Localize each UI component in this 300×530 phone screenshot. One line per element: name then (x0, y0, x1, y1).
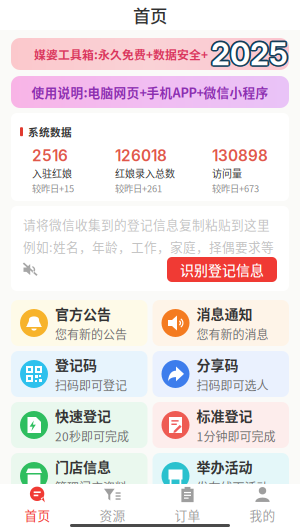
staticText: 登记码 (55, 354, 97, 374)
staticText: 红娘录入总数 (115, 166, 175, 180)
button[interactable]: 门店信息 (11, 453, 147, 499)
staticText: 2025 (210, 34, 287, 71)
staticText: 2025 (211, 34, 288, 71)
staticText: 请将微信收集到的登记信息复制粘贴到这里 (23, 215, 270, 233)
staticText: 识别登记信息 (180, 259, 264, 280)
staticText: 门店信息 (55, 456, 111, 476)
staticText: 标准登记 (196, 405, 252, 425)
staticText: 20秒即可完成 (55, 427, 129, 445)
button[interactable]: 消息通知 (152, 300, 289, 346)
staticText: 2025 (212, 34, 289, 71)
staticText: 2025 (210, 37, 287, 74)
staticText: 首页 (133, 2, 167, 28)
staticText: 2025 (209, 35, 286, 72)
staticText: 1分钟即可完成 (196, 427, 275, 445)
staticText: 分享码 (196, 354, 238, 374)
staticText: 消息通知 (196, 303, 252, 323)
staticText: 2025 (211, 35, 288, 72)
staticText: 较昨日+673 (212, 181, 259, 195)
button[interactable]: 举办活动 (152, 453, 289, 499)
staticText: 126018 (115, 146, 167, 165)
staticText: 2516 (32, 146, 68, 165)
button[interactable]: 识别登记信息 (167, 257, 277, 282)
staticText: 较昨日+261 (115, 181, 162, 195)
staticText: 您有新的消息 (196, 325, 268, 343)
staticText: 举办活动 (196, 456, 252, 476)
staticText: 130898 (212, 146, 268, 165)
staticText: 我的 (249, 506, 275, 524)
staticText: 例如:姓名，年龄，工作，家庭，择偶要求等 (23, 237, 274, 256)
button[interactable]: 官方公告 (11, 300, 147, 346)
staticText: 官方公告 (55, 303, 111, 323)
button[interactable]: 快速登记 (11, 402, 147, 448)
button[interactable]: 我的 (225, 486, 300, 524)
staticText: 扫码即可选人 (196, 376, 268, 394)
staticText: 发布线下活动 (196, 478, 268, 496)
button[interactable]: 分享码 (152, 351, 289, 397)
staticText: 管理门店资料 (55, 478, 127, 496)
staticText: 2025 (211, 37, 288, 74)
staticText: 使用说明:电脑网页+手机APP+微信小程序 (31, 83, 268, 101)
staticText: 较昨日+15 (32, 181, 74, 195)
staticText: 2025 (213, 35, 290, 72)
staticText: 媒婆工具箱:永久免费+数据安全+ (34, 45, 208, 63)
button[interactable]: 首页 (0, 486, 75, 524)
button[interactable]: 标准登记 (152, 402, 289, 448)
staticText: 访问量 (212, 166, 242, 180)
staticText: 系统数据 (28, 124, 72, 139)
staticText: 首页 (24, 506, 50, 524)
button[interactable]: 登记码 (11, 351, 147, 397)
staticText: 您有新的公告 (55, 325, 127, 343)
staticText: 订单 (174, 506, 200, 524)
button[interactable]: 资源 (75, 486, 150, 524)
staticText: 快速登记 (55, 405, 111, 425)
staticText: 扫码即可登记 (55, 376, 127, 394)
staticText: 资源 (99, 506, 125, 524)
staticText: 入驻红娘 (32, 166, 72, 180)
staticText: 2025 (212, 37, 289, 74)
button[interactable]: 订单 (150, 486, 225, 524)
